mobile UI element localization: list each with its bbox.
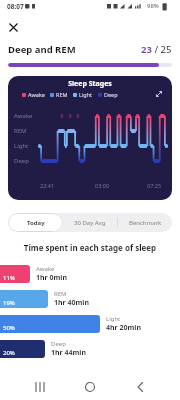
- staticText: REM: [14, 127, 27, 135]
- button[interactable]: [8, 22, 20, 34]
- staticText: 03:00: [95, 182, 110, 189]
- button[interactable]: Today: [8, 213, 63, 232]
- staticText: Deep: [14, 157, 29, 165]
- staticText: Sleep Stages: [8, 79, 172, 89]
- staticText: 1hr 0min: [36, 273, 67, 283]
- button[interactable]: 50%: [0, 315, 100, 333]
- staticText: REM: [56, 91, 68, 98]
- button[interactable]: 30 Day Avg: [63, 213, 117, 232]
- staticText: Awake: [28, 91, 45, 98]
- button[interactable]: 19%: [0, 290, 48, 308]
- staticText: Light: [79, 91, 93, 98]
- staticText: 08:07: [7, 2, 24, 11]
- staticText: 98%: [147, 2, 159, 10]
- staticText: Deep and REM: [8, 43, 76, 56]
- staticText: 22:41: [40, 182, 55, 189]
- staticText: 11%: [3, 274, 15, 282]
- staticText: Deep: [104, 91, 118, 98]
- button[interactable]: 20%: [0, 340, 45, 358]
- staticText: 50%: [3, 324, 15, 332]
- staticText: Benchmark: [129, 219, 162, 227]
- staticText: / 25: [152, 43, 172, 56]
- button[interactable]: 11%: [0, 265, 30, 283]
- button[interactable]: Benchmark: [118, 213, 172, 232]
- staticText: Awake: [14, 112, 33, 120]
- staticText: 23: [141, 43, 152, 56]
- staticText: 1hr 40min: [54, 298, 89, 308]
- staticText: Light: [14, 142, 29, 150]
- staticText: 1hr 44min: [51, 348, 86, 358]
- button[interactable]: [80, 377, 100, 397]
- staticText: REM: [54, 290, 67, 298]
- staticText: Light: [106, 315, 121, 323]
- button[interactable]: [130, 377, 150, 397]
- button[interactable]: [30, 377, 50, 397]
- staticText: 4hr 20min: [106, 323, 141, 333]
- staticText: Today: [27, 219, 45, 227]
- staticText: 07:25: [147, 182, 162, 189]
- staticText: 19%: [3, 299, 15, 307]
- staticText: 30 Day Avg: [74, 219, 106, 227]
- staticText: 20%: [3, 349, 15, 357]
- staticText: Time spent in each stage of sleep: [0, 242, 180, 253]
- staticText: Deep: [51, 340, 66, 348]
- staticText: Awake: [36, 265, 55, 273]
